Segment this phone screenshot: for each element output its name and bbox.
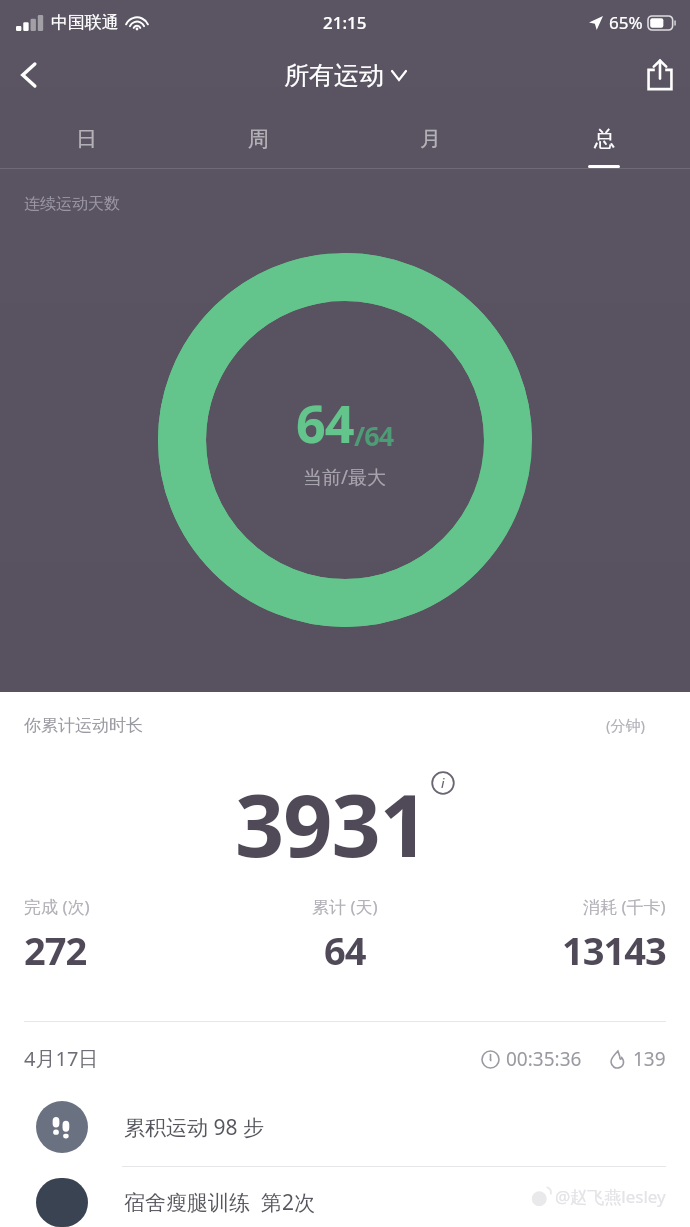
staticText: @赵飞燕lesley [555, 1185, 666, 1208]
staticText: i [441, 774, 445, 792]
button[interactable]: 累积运动 98 步 [0, 1098, 690, 1156]
staticText: 完成 (次) [24, 895, 90, 918]
button[interactable]: 日 [0, 112, 172, 168]
button[interactable]: 累计 (天) [312, 895, 378, 976]
staticText: /64 [354, 417, 394, 454]
staticText: 3931 [235, 765, 428, 882]
staticText: 139 [633, 1046, 666, 1072]
staticText: 累积运动 98 步 [124, 1113, 264, 1142]
staticText: 宿舍瘦腿训练 第2次 [124, 1188, 315, 1217]
staticText: 272 [24, 924, 87, 976]
staticText: 4月17日 [24, 1045, 99, 1072]
button[interactable]: 宿舍瘦腿训练 第2次 [0, 1178, 690, 1227]
staticText: 你累计运动时长 [24, 715, 143, 736]
staticText: 64 [324, 924, 366, 976]
staticText: 日 [76, 126, 97, 152]
staticText: 周 [248, 126, 269, 152]
staticText: 消耗 (千卡) [583, 895, 666, 918]
staticText: 连续运动天数 [24, 194, 120, 214]
staticText: 月 [420, 126, 441, 152]
staticText: 当前/最大 [303, 464, 387, 490]
button[interactable]: 总 [517, 112, 690, 168]
staticText: 00:35:36 [506, 1046, 582, 1072]
button[interactable]: 月 [344, 112, 517, 168]
button[interactable]: 消耗 (千卡) [562, 895, 666, 976]
button[interactable]: 所有运动 [284, 60, 406, 91]
staticText: 所有运动 [284, 60, 384, 91]
button[interactable]: 周 [172, 112, 344, 168]
button[interactable]: Share [630, 45, 690, 105]
staticText: 13143 [562, 924, 666, 976]
staticText: 累计 (天) [312, 895, 378, 918]
staticText: (分钟) [606, 715, 646, 735]
staticText: 64 [296, 387, 354, 458]
button[interactable]: Back [0, 45, 60, 105]
staticText: 65% [609, 11, 643, 34]
staticText: 总 [594, 126, 615, 152]
button[interactable]: 完成 (次) [24, 895, 90, 976]
staticText: 中国联通 [51, 12, 119, 33]
staticText: 21:15 [323, 11, 367, 34]
